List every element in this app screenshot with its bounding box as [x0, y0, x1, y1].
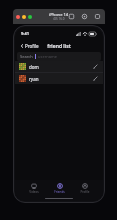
- staticText: Profile: [80, 190, 90, 194]
- button[interactable]: Videos: [21, 180, 47, 196]
- button[interactable]: Edit ryan: [92, 75, 99, 82]
- button[interactable]: Profile: [18, 42, 41, 50]
- button[interactable]: Screenshot: [94, 13, 101, 20]
- staticText: iPhone 14: [49, 12, 69, 17]
- staticText: iOS 16.0: [53, 17, 65, 21]
- button[interactable]: ryan: [15, 73, 103, 84]
- button[interactable]: dom: [15, 61, 103, 72]
- staticText: username: [38, 54, 58, 59]
- button[interactable]: Search: [17, 52, 101, 61]
- button[interactable]: Settings: [81, 13, 88, 20]
- button[interactable]: Friends: [47, 180, 72, 196]
- staticText: Videos: [29, 190, 39, 194]
- button[interactable]: Profile: [72, 180, 97, 196]
- staticText: Friends: [54, 190, 65, 194]
- button[interactable]: Home: [68, 13, 75, 20]
- button[interactable]: Edit dom: [92, 63, 99, 70]
- staticText: ryan: [29, 76, 39, 82]
- staticText: friend list: [47, 43, 71, 50]
- staticText: Search: [20, 54, 33, 59]
- staticText: 9:41: [21, 31, 29, 36]
- staticText: dom: [29, 64, 39, 70]
- staticText: Profile: [25, 43, 39, 49]
